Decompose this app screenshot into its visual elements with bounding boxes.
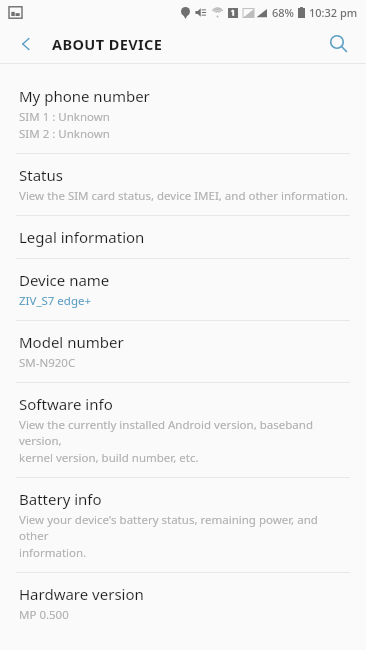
staticText: kernel version, build number, etc.: [19, 450, 199, 466]
staticText: Battery info: [19, 489, 102, 509]
staticText: MP 0.500: [19, 607, 69, 623]
button[interactable]: Legal information: [0, 216, 366, 258]
button[interactable]: Software info: [0, 383, 366, 477]
button[interactable]: Search: [318, 24, 358, 63]
staticText: View the SIM card status, device IMEI, a…: [19, 188, 349, 204]
staticText: ZIV_S7 edge+: [19, 293, 92, 309]
staticText: 10:32 pm: [309, 5, 358, 20]
staticText: View your device's battery status, remai…: [19, 512, 350, 544]
button[interactable]: Status: [0, 154, 366, 215]
button[interactable]: Back: [6, 24, 46, 63]
staticText: Software info: [19, 394, 113, 414]
staticText: SIM 2 : Unknown: [19, 126, 110, 142]
staticText: 68%: [272, 5, 294, 20]
button[interactable]: My phone number: [0, 75, 366, 153]
staticText: Legal information: [19, 227, 145, 247]
staticText: SIM 1 : Unknown: [19, 109, 110, 125]
staticText: View the currently installed Android ver…: [19, 417, 350, 449]
staticText: Status: [19, 165, 63, 185]
staticText: Device name: [19, 270, 110, 290]
staticText: information.: [19, 545, 87, 561]
button[interactable]: Model number: [0, 321, 366, 382]
button[interactable]: Device name: [0, 259, 366, 320]
staticText: My phone number: [19, 86, 150, 106]
staticText: ABOUT DEVICE: [52, 34, 163, 54]
staticText: Model number: [19, 332, 124, 352]
button[interactable]: Hardware version: [0, 573, 366, 634]
staticText: Hardware version: [19, 584, 144, 604]
button[interactable]: Battery info: [0, 478, 366, 572]
staticText: SM-N920C: [19, 355, 76, 371]
